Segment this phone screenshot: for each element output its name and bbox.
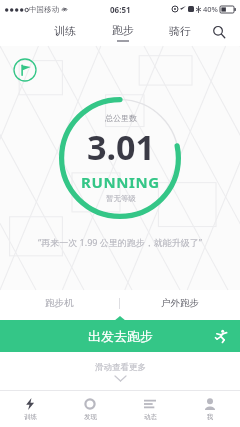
button[interactable]: 动态: [120, 391, 180, 427]
staticText: 发现: [84, 413, 97, 421]
staticText: 暂无等级: [106, 194, 136, 203]
staticText: 40%: [203, 4, 218, 14]
button[interactable]: Level badge: [13, 58, 37, 82]
staticText: RUNNING: [81, 172, 160, 192]
button[interactable]: 户外跑步: [120, 290, 240, 316]
button[interactable]: 训练: [0, 391, 60, 427]
staticText: 动态: [144, 413, 157, 421]
button[interactable]: 我: [180, 391, 240, 427]
button[interactable]: 跑步机: [0, 290, 119, 316]
button[interactable]: 发现: [60, 391, 120, 427]
staticText: 3.01: [87, 124, 155, 170]
staticText: 骑行: [169, 24, 191, 38]
staticText: 出发去跑步: [88, 328, 153, 344]
staticText: 总公里数: [105, 113, 137, 123]
button[interactable]: 出发去跑步: [0, 320, 240, 352]
staticText: 跑步机: [45, 297, 74, 309]
staticText: “再来一次 1.99 公里的跑步，就能升级了”: [0, 236, 240, 248]
button[interactable]: 训练: [36, 18, 94, 46]
staticText: 训练: [24, 413, 37, 421]
staticText: 我: [207, 413, 214, 421]
staticText: 滑动查看更多: [95, 362, 146, 373]
staticText: 户外跑步: [161, 297, 199, 309]
staticText: 06:51: [110, 4, 131, 15]
staticText: 训练: [54, 24, 76, 38]
button[interactable]: 滑动查看更多: [0, 352, 240, 390]
staticText: 跑步: [112, 23, 134, 37]
button[interactable]: Search: [208, 21, 230, 43]
button[interactable]: 跑步: [94, 18, 151, 46]
button[interactable]: 骑行: [151, 18, 208, 46]
staticText: 中国移动: [29, 5, 59, 14]
